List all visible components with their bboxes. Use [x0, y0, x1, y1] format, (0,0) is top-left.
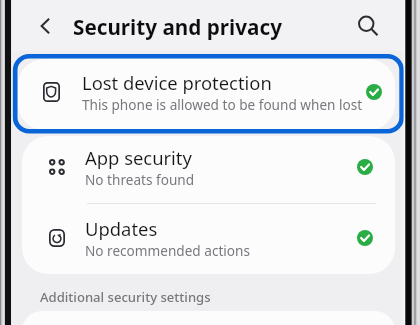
staticText: Security and privacy [73, 13, 282, 41]
button[interactable]: Updates [22, 203, 395, 274]
button[interactable]: App security [22, 136, 395, 203]
button[interactable]: Search [353, 11, 383, 41]
staticText: Updates [85, 216, 158, 241]
button[interactable]: Lost device protection [18, 59, 395, 130]
staticText: App security [85, 145, 192, 170]
button[interactable]: Navigate up [31, 11, 61, 41]
staticText: No threats found [85, 170, 195, 189]
staticText: Lost device protection [82, 70, 272, 95]
staticText: This phone is allowed to be found when l… [82, 95, 363, 114]
staticText: No recommended actions [85, 241, 250, 260]
staticText: Additional security settings [40, 288, 211, 306]
